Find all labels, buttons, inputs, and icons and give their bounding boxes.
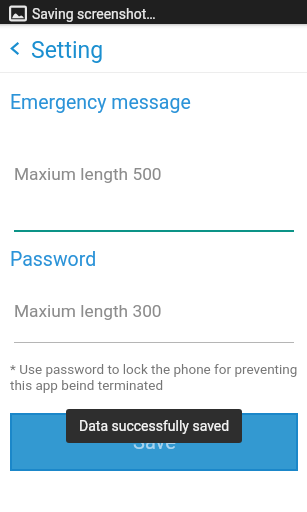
staticText: Maxium length 500 xyxy=(14,164,162,184)
button[interactable]: Maxium length 500 xyxy=(0,150,307,232)
staticText: Maxium length 300 xyxy=(14,301,162,321)
button[interactable]: Maxium length 300 xyxy=(0,288,307,344)
staticText: Emergency message xyxy=(10,91,191,114)
button[interactable]: Back xyxy=(0,24,307,73)
staticText: Data successfully saved xyxy=(79,418,230,434)
button[interactable]: Save xyxy=(12,415,296,469)
staticText: Saving screenshot… xyxy=(32,6,156,22)
staticText: Setting xyxy=(31,37,104,64)
staticText: Save xyxy=(133,430,176,453)
staticText: * Use password to lock the phone for pre… xyxy=(10,361,298,393)
staticText: Password xyxy=(10,248,97,271)
